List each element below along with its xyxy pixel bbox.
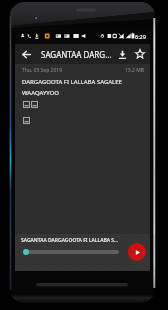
button[interactable]: Favorite bbox=[131, 44, 148, 64]
button[interactable]: Download bbox=[114, 44, 131, 64]
staticText: Thu, 05 Sep 2019 bbox=[22, 67, 63, 74]
staticText: SAGANTAA DARGAGOOTA FI LALLABA S… bbox=[21, 237, 119, 244]
staticText: 6:29 bbox=[135, 33, 146, 40]
staticText: SAGANTAA DARG… bbox=[41, 49, 114, 60]
button[interactable]: Play bbox=[128, 243, 146, 261]
staticText: 13.2 MB bbox=[125, 67, 145, 74]
staticText: DARGAGOOTA FI LALLABA SAGALEE WAAQAYYOO bbox=[22, 78, 122, 97]
button[interactable]: Seek bbox=[24, 250, 119, 254]
button[interactable]: Back bbox=[15, 44, 37, 64]
